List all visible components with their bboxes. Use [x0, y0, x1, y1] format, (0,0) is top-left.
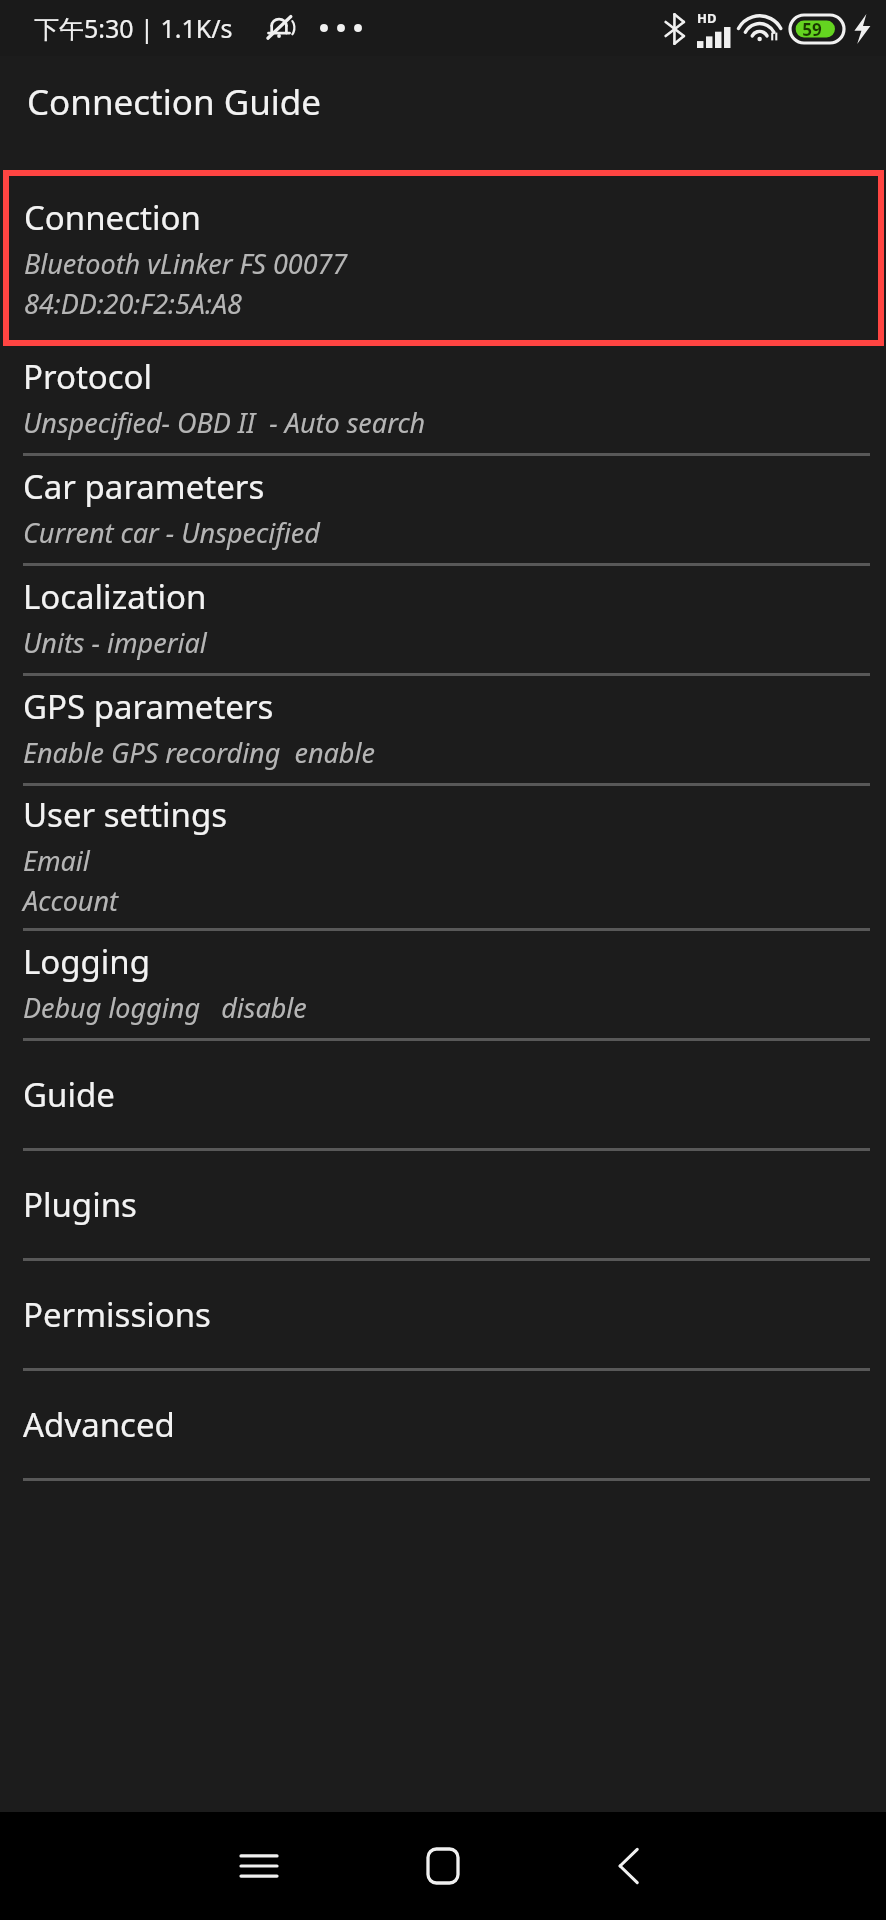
staticText: GPS parameters	[23, 684, 274, 729]
staticText: Permissions	[23, 1292, 211, 1337]
staticText: Connection Guide	[27, 78, 322, 126]
button[interactable]: Back	[584, 1822, 672, 1910]
button[interactable]: Advanced	[0, 1371, 886, 1478]
button[interactable]: Car parameters	[0, 456, 886, 563]
staticText: HD	[697, 9, 717, 27]
staticText: Units - imperial	[23, 624, 207, 661]
staticText: User settings	[23, 792, 228, 837]
staticText: Plugins	[23, 1182, 137, 1227]
staticText: Unspecified- OBD II - Auto search	[23, 404, 426, 441]
button[interactable]: Guide	[0, 1041, 886, 1148]
button[interactable]: GPS parameters	[0, 676, 886, 783]
button[interactable]: Plugins	[0, 1151, 886, 1258]
staticText: Car parameters	[23, 464, 265, 509]
staticText: Connection	[24, 195, 201, 240]
staticText: Logging	[23, 939, 151, 984]
staticText: 下午5:30 | 1.1K/s	[34, 11, 233, 45]
staticText: 84:DD:20:F2:5A:A8	[24, 285, 242, 322]
staticText: Localization	[23, 574, 207, 619]
staticText: 59	[802, 18, 822, 41]
button[interactable]: Protocol	[0, 346, 886, 453]
staticText: Guide	[23, 1072, 115, 1117]
button[interactable]: User settings	[0, 786, 886, 928]
staticText: Advanced	[23, 1402, 175, 1447]
staticText: Email	[23, 842, 90, 879]
button[interactable]: Recent apps	[215, 1822, 303, 1910]
staticText: Current car - Unspecified	[23, 514, 320, 551]
staticText: Protocol	[23, 354, 153, 399]
staticText: Bluetooth vLinker FS 00077	[24, 245, 348, 282]
button[interactable]: Home	[399, 1822, 487, 1910]
staticText: Debug logging disable	[23, 989, 307, 1026]
button[interactable]: Localization	[0, 566, 886, 673]
button[interactable]: Logging	[0, 931, 886, 1038]
button[interactable]: Connection	[3, 170, 884, 346]
staticText: Account	[23, 882, 119, 919]
staticText: Enable GPS recording enable	[23, 734, 375, 771]
button[interactable]: Permissions	[0, 1261, 886, 1368]
